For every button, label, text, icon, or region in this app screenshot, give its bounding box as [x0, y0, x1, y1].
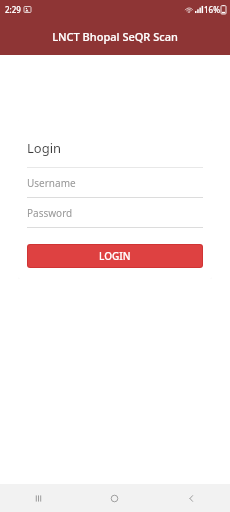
button[interactable]: LOGIN: [28, 245, 202, 267]
button[interactable]: Home: [76, 484, 153, 512]
staticText: Login: [27, 139, 62, 157]
button[interactable]: Back: [153, 484, 230, 512]
staticText: LNCT Bhopal SeQR Scan: [52, 29, 178, 44]
staticText: Password: [27, 206, 73, 220]
staticText: Username: [27, 176, 76, 190]
button[interactable]: Recents: [0, 484, 76, 512]
staticText: 2:29: [5, 4, 21, 15]
staticText: LOGIN: [99, 249, 131, 263]
staticText: 16%: [204, 4, 220, 15]
button[interactable]: Password: [27, 198, 203, 228]
button[interactable]: Username: [27, 168, 203, 198]
